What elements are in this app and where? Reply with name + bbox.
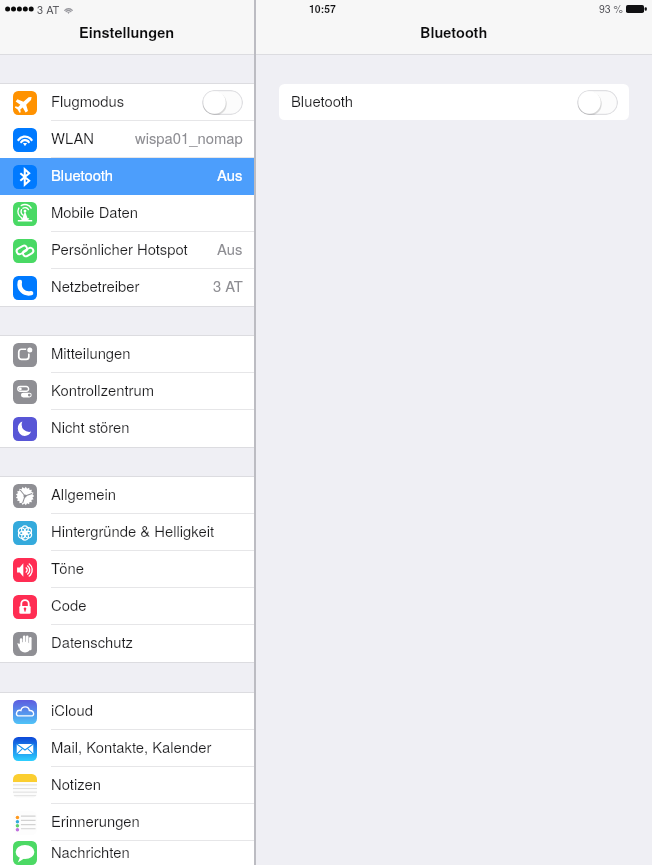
staticText: Erinnerungen [51,810,140,831]
button[interactable]: Erinnerungen [0,804,254,841]
staticText: Hintergründe & Helligkeit [51,520,215,541]
staticText: Netzbetreiber [51,275,140,296]
button[interactable]: Netzbetreiber [0,269,254,306]
button[interactable]: Notizen [0,767,254,804]
button[interactable]: Code [0,588,254,625]
button[interactable]: Kontrollzentrum [0,373,254,410]
staticText: Bluetooth [51,164,113,185]
staticText: Flugmodus [51,90,125,111]
button[interactable]: Allgemein [0,477,254,514]
button[interactable]: Hintergründe & Helligkeit [0,514,254,551]
staticText: 3 AT [37,1,60,17]
button[interactable]: Nicht stören [0,410,254,447]
staticText: 93 % [599,1,623,16]
staticText: Mail, Kontakte, Kalender [51,736,212,757]
staticText: Mitteilungen [51,342,131,363]
staticText: Datenschutz [51,631,134,652]
button[interactable]: Mail, Kontakte, Kalender [0,730,254,767]
staticText: Notizen [51,773,102,794]
button[interactable]: Nachrichten [0,841,254,865]
staticText: 3 AT [213,275,243,296]
staticText: Nachrichten [51,841,130,862]
staticText: Töne [51,557,85,578]
button[interactable]: Töne [0,551,254,588]
staticText: Persönlicher Hotspot [51,238,188,259]
staticText: Kontrollzentrum [51,379,155,400]
staticText: Einstellungen [79,22,175,43]
staticText: iCloud [51,699,93,720]
button[interactable]: Bluetooth [279,84,629,120]
staticText: Aus [217,164,243,185]
button[interactable]: WLAN [0,121,254,158]
staticText: Code [51,594,87,615]
button[interactable]: Mitteilungen [0,336,254,373]
button[interactable]: Toggle off [202,90,243,115]
staticText: Mobile Daten [51,201,138,222]
staticText: wispa01_nomap [135,127,243,148]
staticText: Bluetooth [291,90,353,111]
button[interactable]: Bluetooth [0,158,254,195]
button[interactable]: Flugmodus [0,84,254,121]
staticText: Nicht stören [51,416,130,437]
button[interactable]: Datenschutz [0,625,254,662]
button[interactable]: Persönlicher Hotspot [0,232,254,269]
staticText: Bluetooth [420,22,488,43]
button[interactable]: iCloud [0,693,254,730]
staticText: Allgemein [51,483,116,504]
staticText: WLAN [51,127,94,148]
staticText: Aus [217,238,243,259]
staticText: 10:57 [309,1,336,16]
button[interactable]: Toggle off [577,90,618,115]
button[interactable]: Mobile Daten [0,195,254,232]
